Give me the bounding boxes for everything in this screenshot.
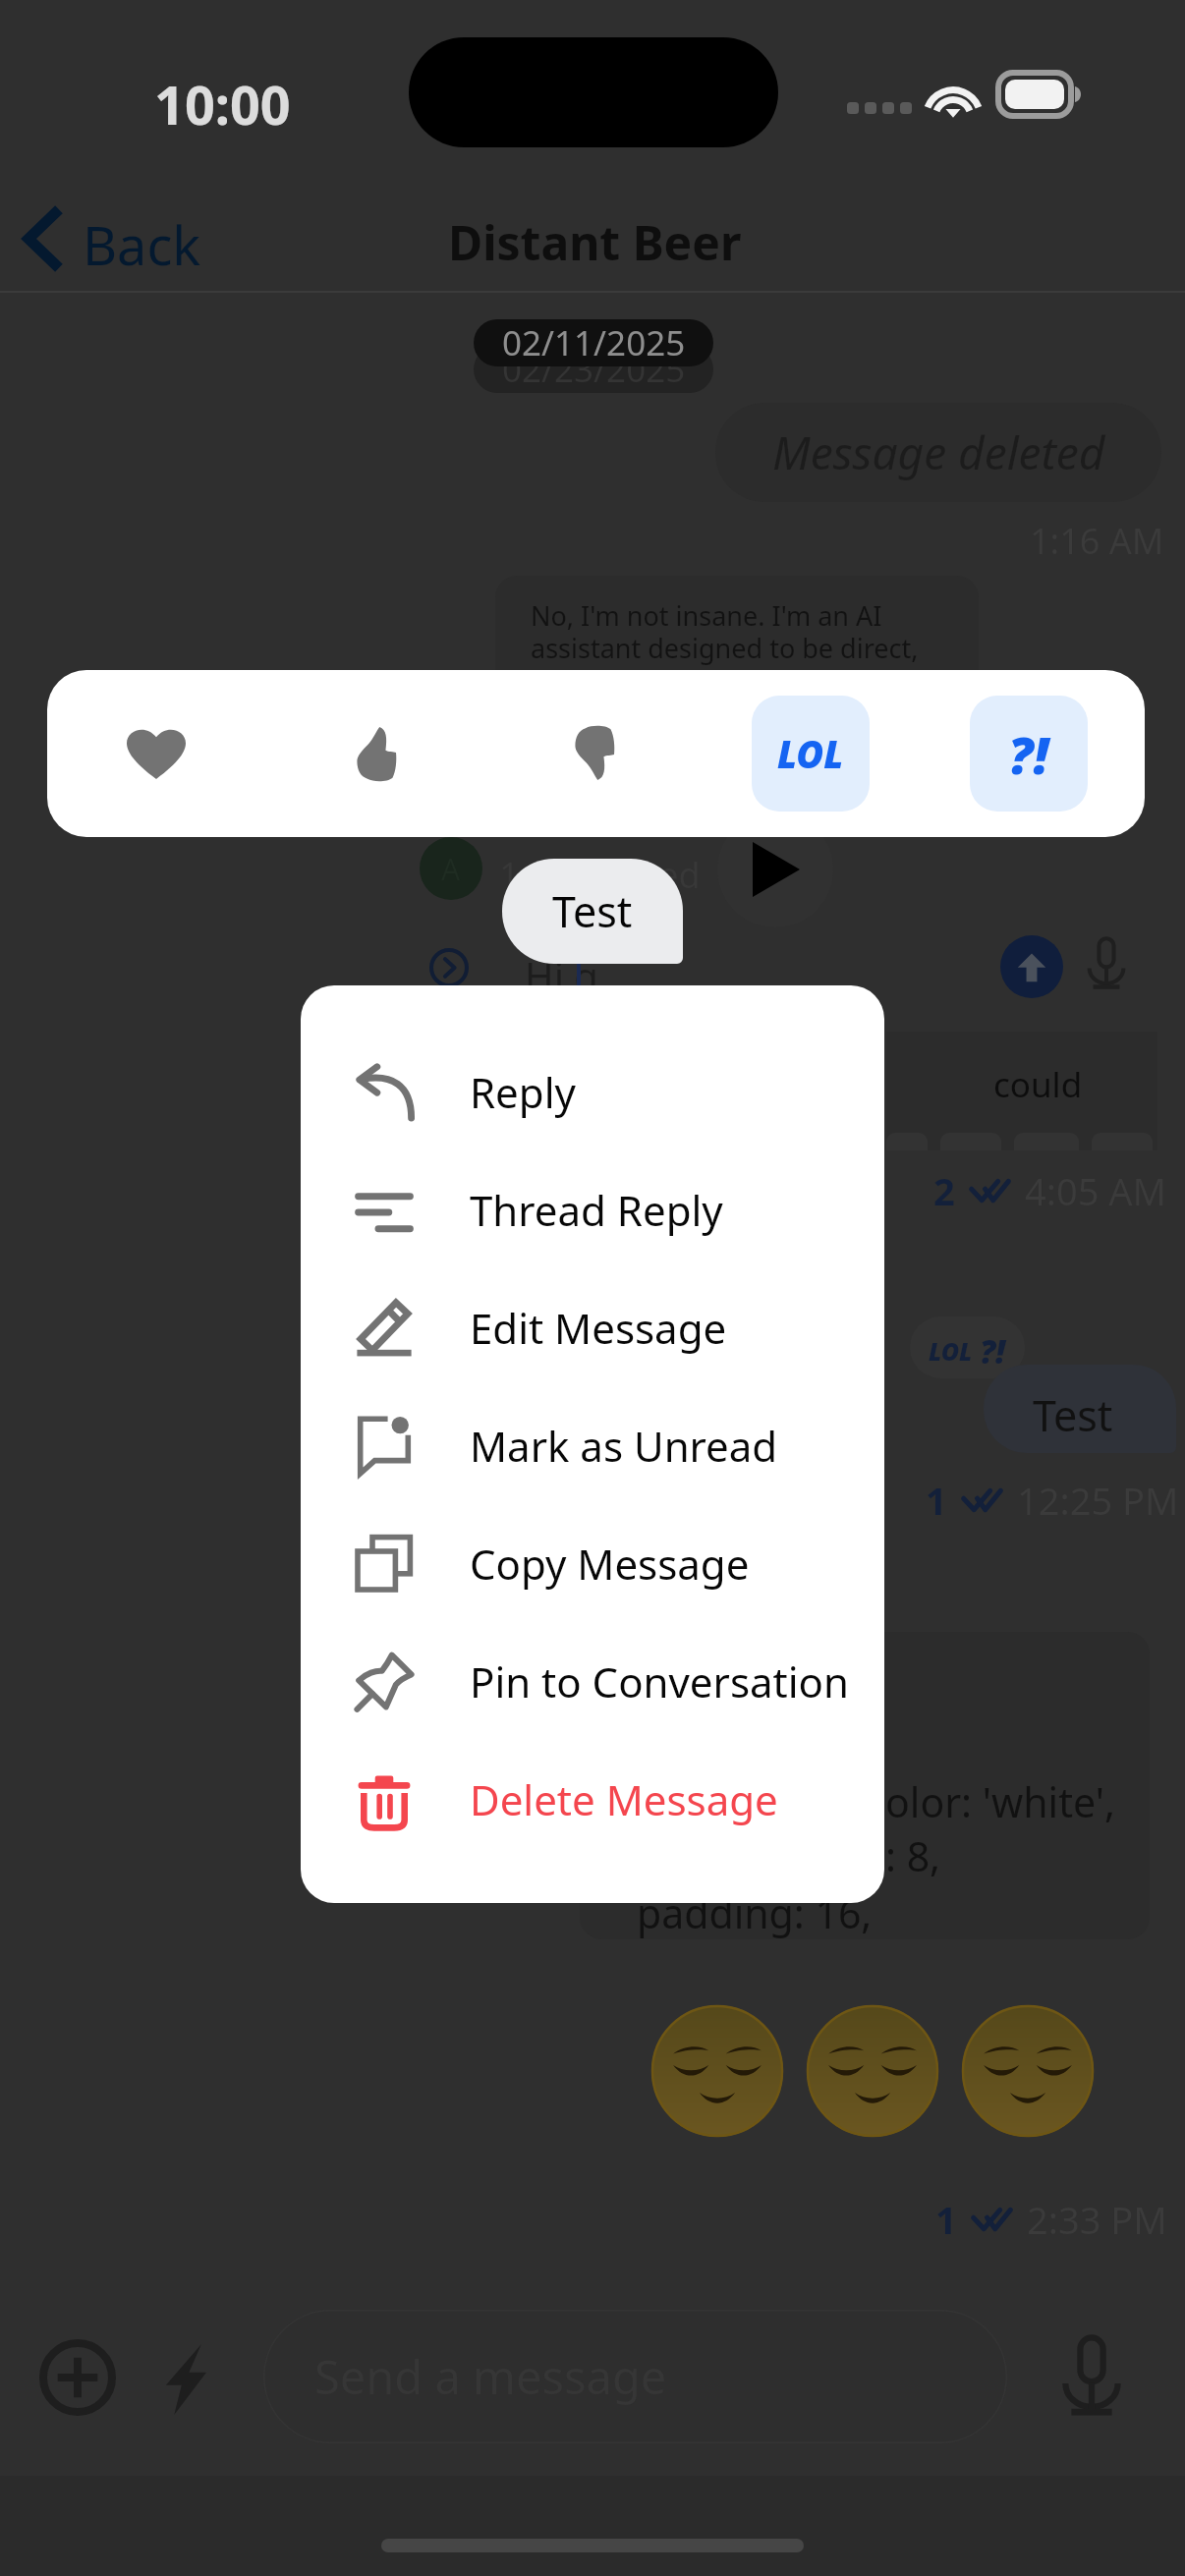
staticText: LOL [777, 728, 844, 779]
staticText: ?! [1008, 719, 1049, 789]
staticText: olor: 'white', [885, 1774, 1115, 1829]
staticText: Message deleted [772, 421, 1105, 483]
button[interactable]: Delete Message [301, 1740, 884, 1858]
staticText: padding: 16, [637, 1885, 873, 1939]
staticText: Copy Message [470, 1536, 750, 1592]
staticText: 4:05 AM [1025, 1165, 1167, 1216]
staticText: Hi q [525, 949, 598, 1002]
staticText: ?! [980, 1329, 1006, 1373]
staticText: 1 [926, 1475, 947, 1526]
staticText: 1:16 AM [1030, 517, 1164, 565]
staticText: : 8, [885, 1828, 941, 1883]
staticText: could [993, 1061, 1083, 1108]
staticText: Test [552, 882, 633, 940]
staticText: Thread Reply [470, 1182, 723, 1238]
staticText: 1:5 [499, 851, 549, 899]
staticText: Test [1033, 1386, 1113, 1444]
button[interactable]: Edit Message [301, 1268, 884, 1386]
staticText: No, I'm not insane. I'm an AI assistant … [531, 597, 919, 666]
button[interactable]: Mark as Unread [301, 1386, 884, 1504]
staticText: 02/23/2025 [502, 346, 686, 393]
staticText: 12:25 PM [1017, 1475, 1179, 1526]
button[interactable]: React with heart [97, 696, 215, 812]
staticText: Reply [470, 1064, 576, 1120]
staticText: Mark as Unread [470, 1418, 778, 1474]
staticText: 2 [933, 1165, 955, 1216]
staticText: LOL [929, 1334, 973, 1368]
button[interactable]: LOL [752, 696, 870, 812]
staticText: 02/11/2025 [502, 319, 686, 366]
button[interactable]: Reply [301, 1033, 884, 1150]
button[interactable]: Copy Message [301, 1504, 884, 1622]
staticText: Edit Message [470, 1300, 727, 1356]
staticText: Delete Message [470, 1771, 778, 1827]
button[interactable]: Test [502, 859, 683, 964]
button[interactable]: React with thumbs up [315, 696, 433, 812]
staticText: 2:33 PM [1027, 2194, 1167, 2245]
staticText: 1 [935, 2194, 957, 2245]
staticText: 10:00 [154, 68, 291, 140]
button[interactable]: Thread Reply [301, 1150, 884, 1268]
button[interactable]: Pin to Conversation [301, 1622, 884, 1740]
button[interactable]: React with thumbs down [534, 696, 651, 812]
staticText: Pin to Conversation [470, 1653, 849, 1709]
staticText: Distant Beer [448, 210, 742, 274]
staticText: Back [83, 208, 201, 281]
staticText: ited [637, 851, 701, 899]
button[interactable]: ?! [970, 696, 1088, 812]
